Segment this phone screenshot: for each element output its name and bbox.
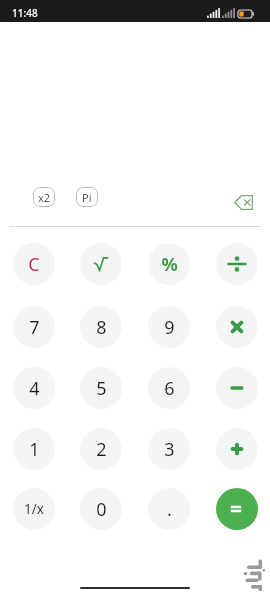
button[interactable]: Pi [76,187,98,207]
staticText: 7 [29,315,40,340]
button[interactable]: 6 [148,367,190,409]
button[interactable]: x2 [33,187,55,207]
button[interactable]: 4 [13,367,55,409]
button[interactable]: . [148,488,190,530]
button[interactable]: 3 [148,428,190,470]
button[interactable]: Divide [216,243,258,285]
staticText: Pi [82,190,92,205]
staticText: 3 [164,437,175,462]
staticText: 11:48 [12,6,38,20]
staticText: C [28,252,40,277]
button[interactable]: Multiply [216,306,258,348]
button[interactable]: 2 [80,428,122,470]
staticText: 9 [164,315,175,340]
staticText: 0 [96,497,107,522]
button[interactable]: Equals [216,488,258,530]
button[interactable]: 9 [148,306,190,348]
staticText: % [161,252,178,277]
button[interactable]: Minus [216,367,258,409]
button[interactable]: C [13,243,55,285]
staticText: 4 [29,376,40,401]
button[interactable]: Plus [216,428,258,470]
button[interactable]: 5 [80,367,122,409]
button[interactable]: 0 [80,488,122,530]
button[interactable]: 1/x [13,488,55,530]
button[interactable]: Backspace [231,190,255,214]
staticText: 2 [96,437,107,462]
button[interactable]: 1 [13,428,55,470]
staticText: 1/x [24,500,44,518]
button[interactable]: 8 [80,306,122,348]
staticText: 1 [29,437,40,462]
button[interactable]: Square root [80,243,122,285]
staticText: x2 [38,190,51,205]
staticText: 8 [96,315,107,340]
button[interactable]: 7 [13,306,55,348]
staticText: . [167,497,172,522]
staticText: 6 [164,376,175,401]
button[interactable]: % [148,243,190,285]
staticText: 5 [96,376,107,401]
